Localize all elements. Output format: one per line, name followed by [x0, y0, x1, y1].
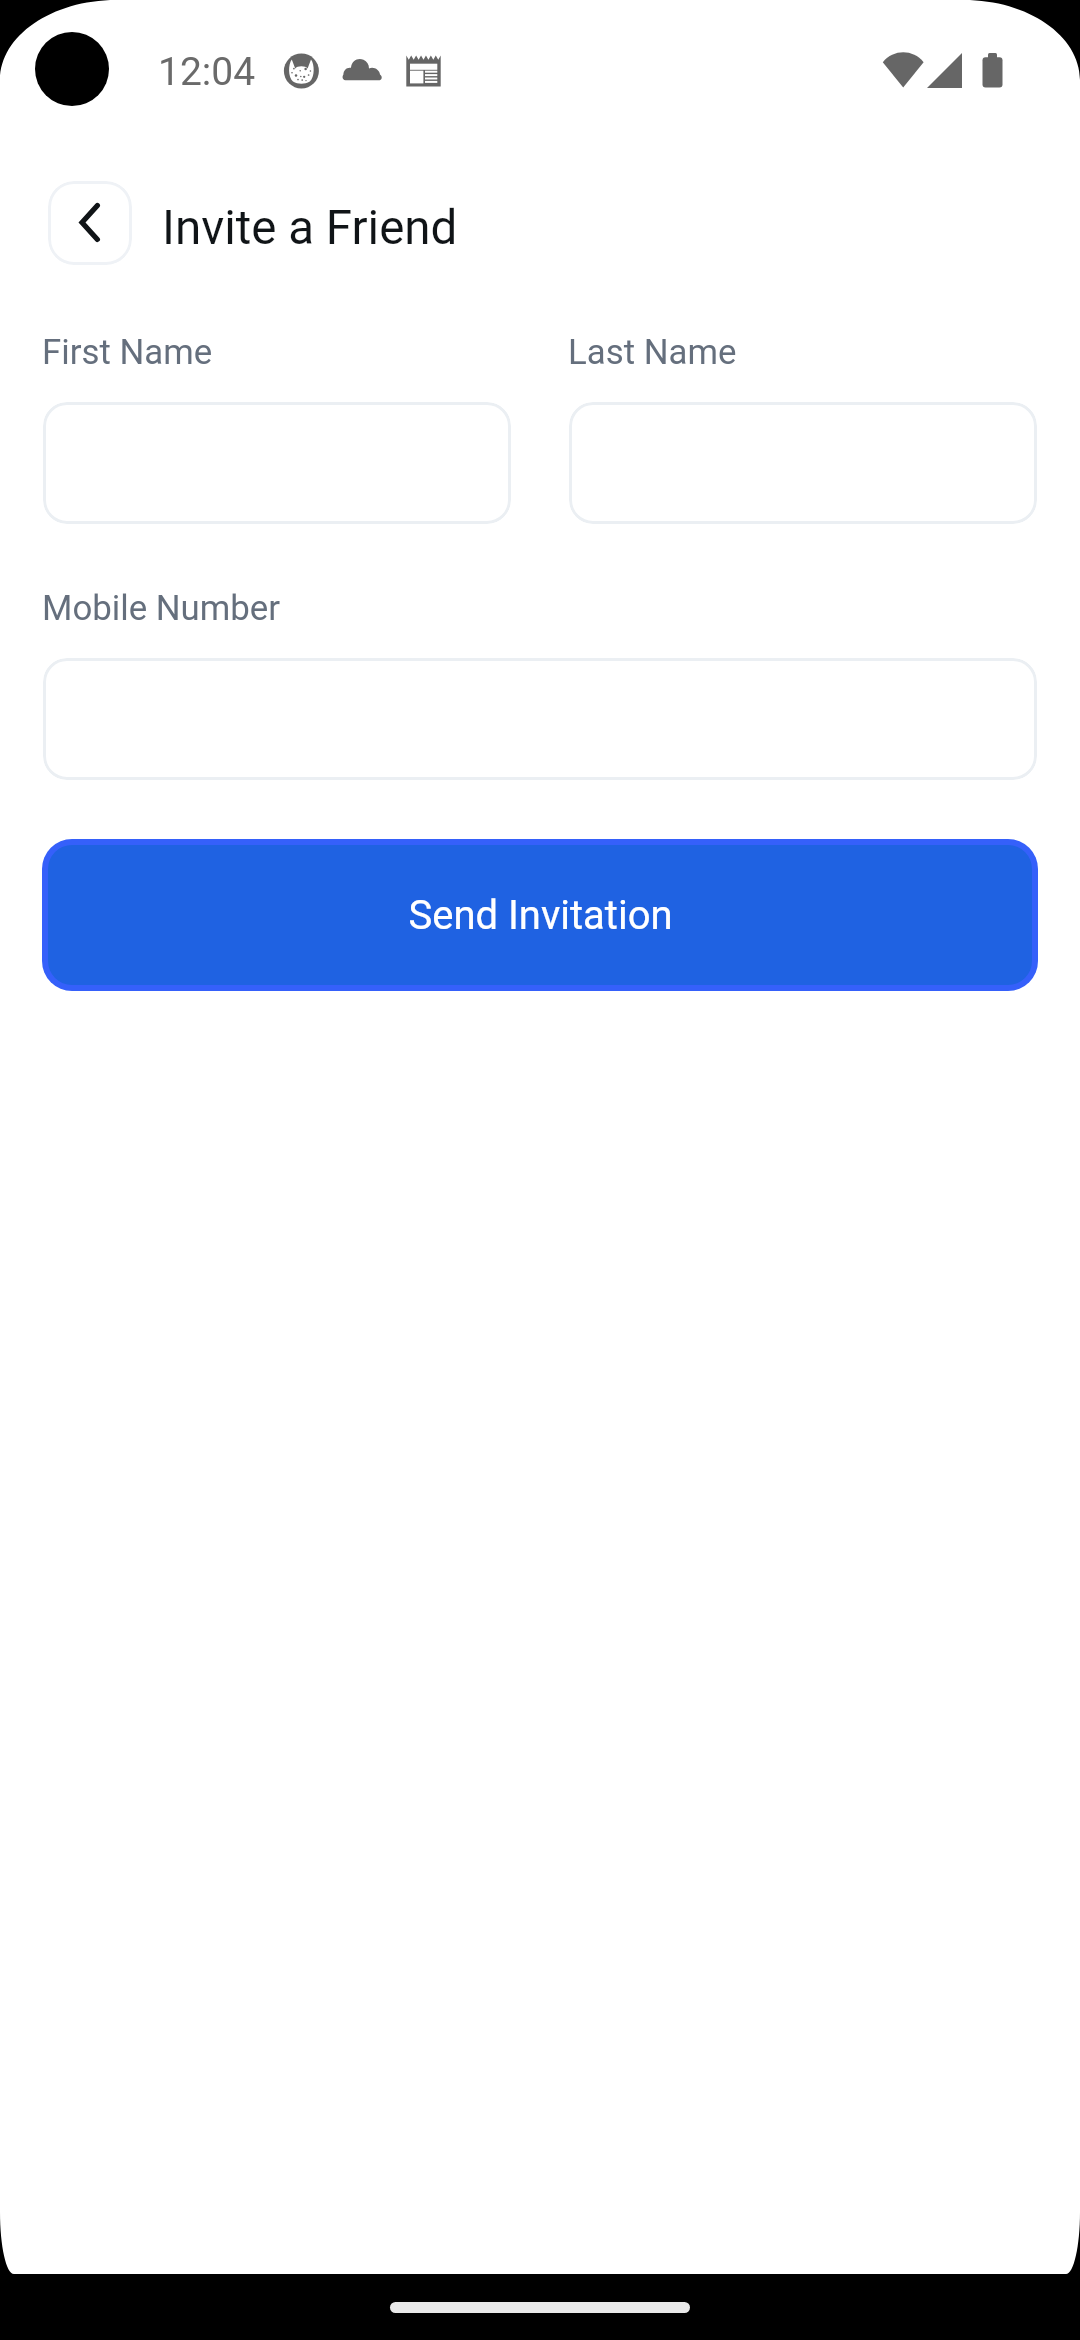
staticText: First Name: [42, 332, 213, 373]
button[interactable]: [569, 402, 1037, 524]
button[interactable]: Send Invitation: [48, 845, 1032, 985]
staticText: Last Name: [568, 332, 737, 373]
button[interactable]: [43, 658, 1037, 780]
staticText: Send Invitation: [408, 892, 673, 939]
staticText: 12:04: [158, 49, 256, 95]
button[interactable]: [43, 402, 511, 524]
button[interactable]: Back: [48, 181, 132, 265]
staticText: Mobile Number: [42, 588, 281, 629]
staticText: Invite a Friend: [162, 200, 458, 256]
